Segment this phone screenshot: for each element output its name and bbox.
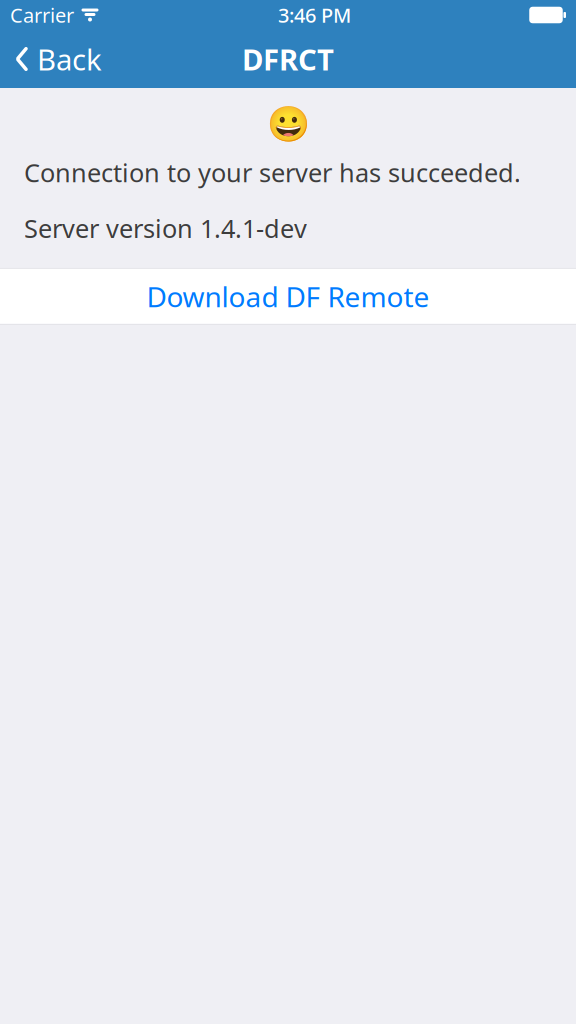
button[interactable]: Download DF Remote [0,269,576,324]
staticText: DFRCT [242,39,334,78]
staticText: 😀 [266,104,309,144]
staticText: Server version 1.4.1-dev [24,211,307,245]
staticText: 3:46 PM [278,2,351,28]
staticText: Back [37,39,102,78]
staticText: Connection to your server has succeeded. [24,156,521,189]
staticText: Download DF Remote [146,278,429,315]
staticText: Carrier [10,2,74,28]
button[interactable]: Back [0,30,116,88]
